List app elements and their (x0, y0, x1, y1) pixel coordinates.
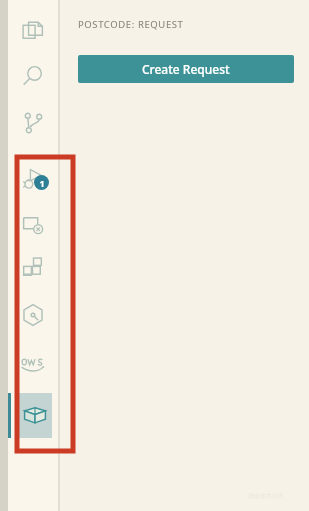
button[interactable]: Source Control (20, 110, 46, 136)
button[interactable]: Extensions (20, 256, 46, 282)
button[interactable]: Run and Debug (20, 167, 46, 193)
button[interactable]: Package (18, 393, 52, 438)
button[interactable]: Explorer (20, 18, 46, 44)
button[interactable]: AWS (20, 350, 46, 376)
button[interactable]: Search (20, 63, 46, 89)
staticText: POSTCODE: REQUEST (78, 18, 184, 31)
staticText: 掘金技术社区 (248, 492, 284, 500)
button[interactable]: Docker (20, 302, 46, 328)
staticText: 1 (39, 177, 45, 189)
button[interactable]: Create Request (78, 55, 294, 83)
button[interactable]: Package (22, 402, 48, 428)
button[interactable]: Remote Explorer (20, 211, 46, 237)
staticText: Create Request (142, 61, 230, 77)
